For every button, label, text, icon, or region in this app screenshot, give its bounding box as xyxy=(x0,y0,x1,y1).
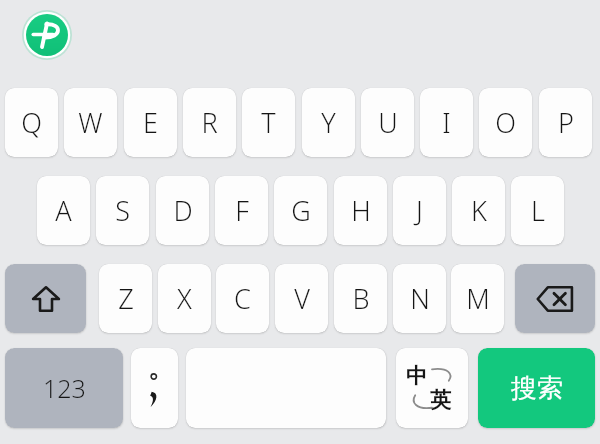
button[interactable]: T xyxy=(242,88,295,157)
staticText: F xyxy=(235,192,249,229)
button[interactable]: X xyxy=(158,264,211,333)
staticText: 搜索 xyxy=(511,372,563,405)
staticText: 中 xyxy=(406,363,427,389)
staticText: N xyxy=(410,280,430,317)
button[interactable]: M xyxy=(451,264,504,333)
button[interactable]: N xyxy=(393,264,446,333)
staticText: J xyxy=(416,192,423,229)
button[interactable]: Q xyxy=(5,88,58,157)
button[interactable]: P xyxy=(539,88,592,157)
staticText: C xyxy=(234,280,251,317)
button[interactable]: C xyxy=(216,264,269,333)
staticText: G xyxy=(291,192,311,229)
staticText: S xyxy=(115,192,130,229)
staticText: Q xyxy=(21,104,42,141)
staticText: H xyxy=(351,192,371,229)
button[interactable]: E xyxy=(124,88,177,157)
button[interactable]: D xyxy=(156,176,209,245)
button[interactable]: L xyxy=(511,176,564,245)
button[interactable]: Z xyxy=(99,264,152,333)
staticText: T xyxy=(261,104,276,141)
button[interactable]: F xyxy=(215,176,268,245)
button[interactable]: 123 xyxy=(5,348,123,428)
staticText: M xyxy=(466,280,490,317)
button[interactable]: O xyxy=(479,88,532,157)
staticText: O xyxy=(495,104,516,141)
button[interactable]: S xyxy=(96,176,149,245)
staticText: D xyxy=(173,192,193,229)
staticText: W xyxy=(78,104,103,141)
staticText: R xyxy=(201,104,218,141)
staticText: A xyxy=(55,192,72,229)
staticText: X xyxy=(177,280,192,317)
button[interactable]: G xyxy=(274,176,327,245)
staticText: 123 xyxy=(43,371,86,405)
button[interactable]: App logo xyxy=(22,10,72,60)
button[interactable]: W xyxy=(64,88,117,157)
button[interactable]: B xyxy=(334,264,387,333)
button[interactable]: Switch Chinese English xyxy=(396,348,468,428)
button[interactable]: H xyxy=(334,176,387,245)
button[interactable]: Shift xyxy=(5,264,86,333)
button[interactable]: 搜索 xyxy=(478,348,595,428)
staticText: U xyxy=(378,104,398,141)
staticText: Z xyxy=(118,280,134,317)
staticText: E xyxy=(143,104,158,141)
button[interactable]: Punctuation xyxy=(131,348,178,428)
button[interactable]: Y xyxy=(302,88,355,157)
button[interactable]: R xyxy=(183,88,236,157)
staticText: L xyxy=(531,192,545,229)
button[interactable]: A xyxy=(37,176,90,245)
button[interactable]: Backspace xyxy=(515,264,595,333)
staticText: I xyxy=(442,104,451,141)
button[interactable]: J xyxy=(393,176,446,245)
button[interactable]: U xyxy=(361,88,414,157)
button[interactable]: V xyxy=(275,264,328,333)
staticText: 英 xyxy=(430,387,451,413)
staticText: V xyxy=(294,280,310,317)
staticText: K xyxy=(471,192,487,229)
staticText: B xyxy=(352,280,370,317)
button[interactable]: K xyxy=(452,176,505,245)
staticText: P xyxy=(558,104,574,141)
button[interactable]: I xyxy=(420,88,473,157)
staticText: Y xyxy=(321,104,336,141)
